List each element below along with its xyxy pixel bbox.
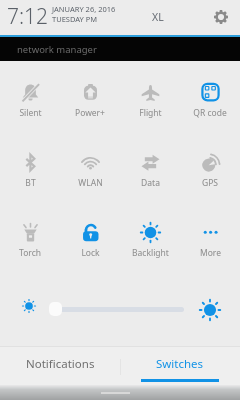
staticText: Flight xyxy=(139,107,162,119)
staticText: QR code xyxy=(193,107,227,119)
staticText: Backlight xyxy=(132,247,169,259)
staticText: BT xyxy=(25,177,36,189)
button[interactable]: Switches xyxy=(120,346,240,385)
staticText: Torch xyxy=(19,247,41,259)
button[interactable]: Flight xyxy=(120,76,180,146)
staticText: Notifications xyxy=(26,356,95,372)
staticText: TUESDAY PM xyxy=(52,14,98,24)
button[interactable]: Data xyxy=(120,146,180,216)
button[interactable]: Silent xyxy=(0,76,60,146)
button[interactable]: Lock xyxy=(60,216,120,286)
button[interactable]: BT xyxy=(0,146,60,216)
staticText: Silent xyxy=(19,107,42,119)
staticText: Data xyxy=(141,177,160,189)
staticText: JANUARY 26, 2016 xyxy=(52,4,116,14)
button[interactable] xyxy=(53,307,184,312)
button[interactable]: Minimum brightness xyxy=(18,295,39,316)
button[interactable]: QR code xyxy=(180,76,240,146)
button[interactable]: Power+ xyxy=(60,76,120,146)
button[interactable]: network manager xyxy=(0,37,240,61)
button[interactable]: WLAN xyxy=(60,146,120,216)
staticText: Switches xyxy=(156,356,204,372)
staticText: network manager xyxy=(17,43,97,56)
button[interactable]: Notifications xyxy=(0,346,120,385)
button[interactable]: GPS xyxy=(180,146,240,216)
staticText: More xyxy=(200,247,221,259)
staticText: GPS xyxy=(202,177,218,189)
staticText: XL xyxy=(152,10,164,24)
button[interactable]: Torch xyxy=(0,216,60,286)
staticText: Lock xyxy=(81,247,100,259)
button[interactable]: Backlight xyxy=(120,216,180,286)
staticText: 7:12 xyxy=(7,2,49,31)
button[interactable]: Settings xyxy=(208,4,234,30)
staticText: Power+ xyxy=(75,107,105,119)
staticText: WLAN xyxy=(78,177,103,189)
button[interactable]: Maximum brightness xyxy=(198,298,222,322)
button[interactable]: More xyxy=(180,216,240,286)
